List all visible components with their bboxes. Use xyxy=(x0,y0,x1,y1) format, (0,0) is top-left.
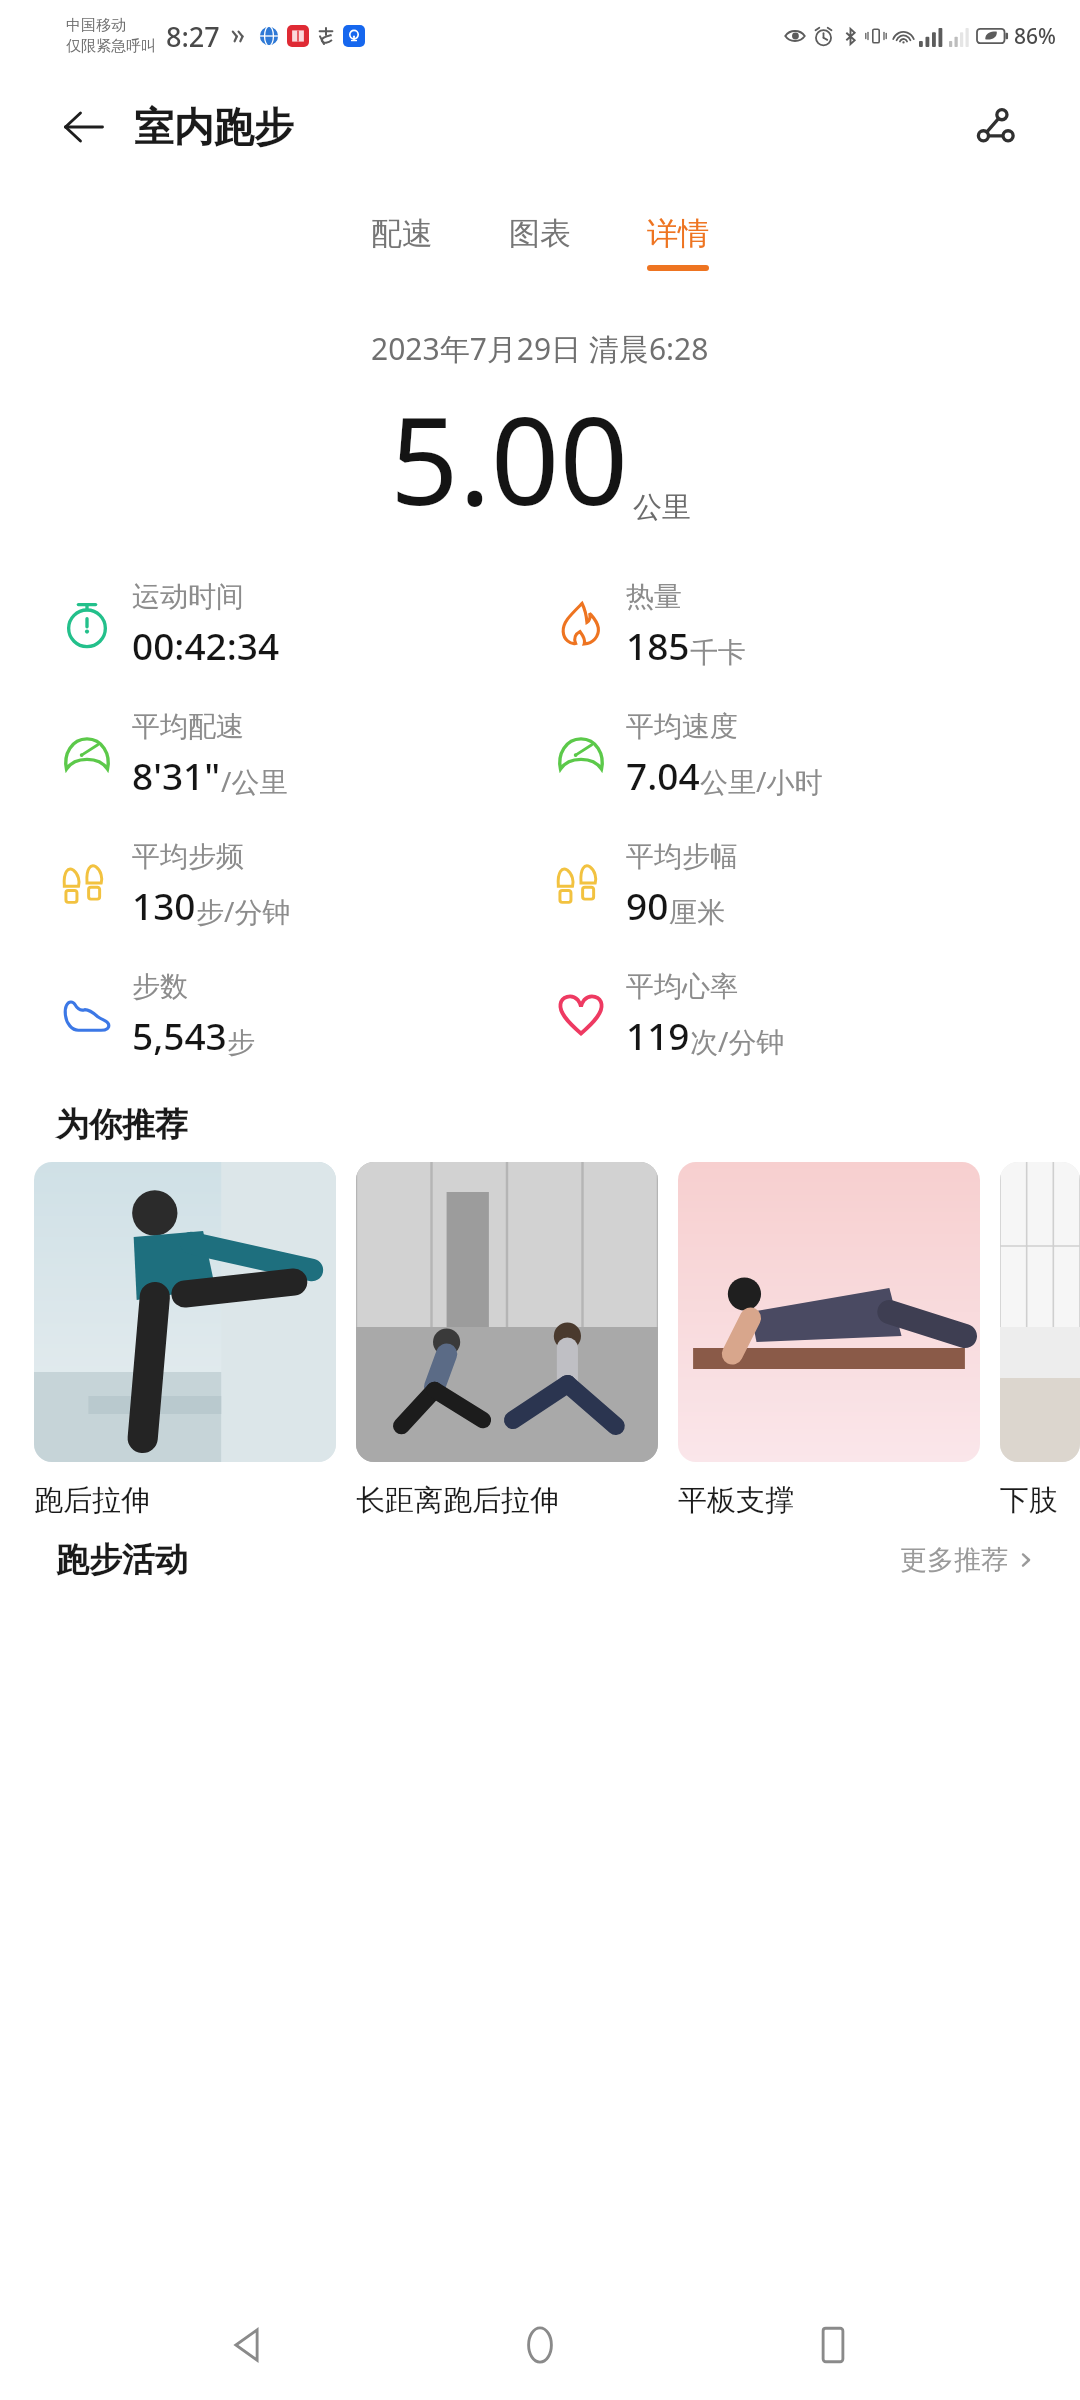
button[interactable]: 步数 xyxy=(56,958,540,1070)
staticText: 千卡 xyxy=(690,635,746,670)
staticText: 步 xyxy=(227,1025,255,1060)
button[interactable]: 长距离跑后拉伸 xyxy=(356,1162,658,1519)
staticText: /公里 xyxy=(221,762,288,800)
staticText: 平均步频 xyxy=(132,839,244,874)
button[interactable]: 平均速度 xyxy=(550,698,1080,810)
staticText: 130 xyxy=(132,880,196,930)
button[interactable]: 平均配速 xyxy=(56,698,540,810)
button[interactable]: 运动时间 xyxy=(56,568,540,680)
staticText: 中国移动 xyxy=(66,16,126,35)
staticText: 室内跑步 xyxy=(134,102,294,152)
staticText: 详情 xyxy=(647,214,709,253)
staticText: 下肢 xyxy=(1000,1482,1058,1519)
staticText: 厘米 xyxy=(669,895,725,930)
staticText: 仅限紧急呼叫 xyxy=(66,37,156,56)
button[interactable]: 平板支撑 xyxy=(678,1162,980,1519)
button[interactable]: 最近任务 xyxy=(788,2300,878,2390)
button[interactable]: 跑后拉伸 xyxy=(34,1162,336,1519)
staticText: 步/分钟 xyxy=(196,892,291,930)
staticText: 公里 xyxy=(633,489,691,526)
staticText: 2023年7月29日 清晨6:28 xyxy=(371,328,709,369)
staticText: 平板支撑 xyxy=(678,1482,794,1519)
staticText: 119 xyxy=(626,1010,690,1060)
staticText: 90 xyxy=(626,880,669,930)
button[interactable]: 热量 xyxy=(550,568,1080,680)
staticText: 公里/小时 xyxy=(700,762,823,800)
staticText: 配速 xyxy=(371,214,433,253)
staticText: 5,543 xyxy=(132,1010,227,1060)
staticText: 次/分钟 xyxy=(690,1022,785,1060)
button[interactable]: 配速 xyxy=(361,208,443,277)
button[interactable]: 平均步幅 xyxy=(550,828,1080,940)
staticText: 平均步幅 xyxy=(626,839,738,874)
staticText: 8'31" xyxy=(132,750,221,800)
button[interactable]: 返回 xyxy=(203,2300,293,2390)
staticText: 步数 xyxy=(132,969,188,1004)
button[interactable]: 下肢 xyxy=(1000,1162,1080,1519)
button[interactable]: 平均步频 xyxy=(56,828,540,940)
staticText: 平均心率 xyxy=(626,969,738,1004)
staticText: 00:42:34 xyxy=(132,620,280,670)
button[interactable]: 详情 xyxy=(637,208,719,277)
staticText: 图表 xyxy=(509,214,571,253)
staticText: 平均速度 xyxy=(626,709,738,744)
button[interactable]: 返回 xyxy=(56,99,112,155)
button[interactable]: 主屏幕 xyxy=(495,2300,585,2390)
staticText: 86% xyxy=(1014,22,1056,51)
staticText: 更多推荐 xyxy=(900,1543,1008,1577)
button[interactable]: 图表 xyxy=(499,208,581,277)
staticText: 跑步活动 xyxy=(56,1539,188,1581)
button[interactable]: 平均心率 xyxy=(550,958,1080,1070)
staticText: 平均配速 xyxy=(132,709,244,744)
staticText: 热量 xyxy=(626,579,682,614)
staticText: 5.00 xyxy=(390,377,629,540)
staticText: 7.04 xyxy=(626,750,700,800)
staticText: 185 xyxy=(626,620,690,670)
staticText: 跑后拉伸 xyxy=(34,1482,150,1519)
button[interactable]: 分享 xyxy=(964,97,1024,157)
staticText: 运动时间 xyxy=(132,579,244,614)
button[interactable]: 更多推荐 xyxy=(900,1543,1036,1577)
staticText: 8:27 xyxy=(166,18,220,55)
staticText: 为你推荐 xyxy=(56,1104,188,1146)
staticText: 长距离跑后拉伸 xyxy=(356,1482,559,1519)
